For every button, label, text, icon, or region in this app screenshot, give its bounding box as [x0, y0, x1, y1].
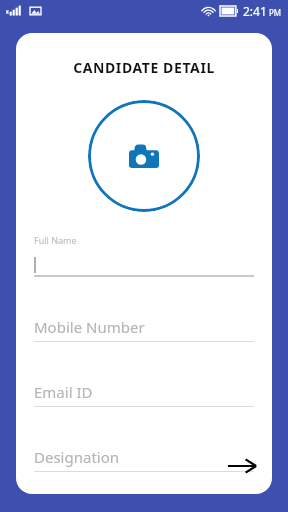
- button[interactable]: Next: [218, 442, 266, 490]
- staticText: Mobile Number: [34, 317, 145, 337]
- staticText: CANDIDATE DETAIL: [73, 58, 215, 77]
- button[interactable]: Email ID: [16, 378, 272, 418]
- staticText: Full Name: [34, 234, 77, 246]
- button[interactable]: Full Name: [16, 234, 272, 282]
- button[interactable]: Mobile Number: [16, 313, 272, 353]
- button[interactable]: Designation: [16, 443, 272, 483]
- staticText: PM: [269, 7, 282, 18]
- staticText: Email ID: [34, 382, 93, 402]
- staticText: Designation: [34, 447, 120, 467]
- staticText: 2:41: [243, 3, 267, 19]
- button[interactable]: Add photo: [88, 100, 200, 212]
